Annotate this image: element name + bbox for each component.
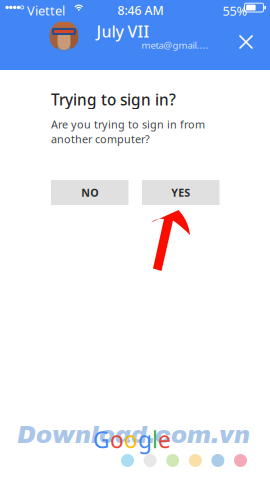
button[interactable]: Close	[229, 25, 263, 59]
staticText: Trying to sign in?	[51, 89, 176, 110]
staticText: July VII	[96, 20, 149, 42]
button[interactable]: YES	[142, 180, 219, 205]
staticText: meta@gmail....	[141, 38, 208, 52]
staticText: Download.com.vn	[17, 422, 250, 448]
staticText: o	[124, 424, 138, 455]
staticText: e	[158, 424, 171, 455]
staticText: NO	[81, 185, 98, 200]
button[interactable]: NO	[51, 180, 128, 205]
staticText: Viettel	[27, 2, 65, 19]
staticText: YES	[171, 185, 190, 200]
staticText: l	[152, 424, 158, 455]
staticText: G	[93, 424, 110, 455]
staticText: Are you trying to sign in from another c…	[51, 117, 205, 146]
staticText: 55%	[222, 2, 247, 19]
staticText: 8:46 AM	[117, 2, 163, 19]
staticText: o	[110, 424, 124, 455]
staticText: g	[138, 424, 152, 455]
